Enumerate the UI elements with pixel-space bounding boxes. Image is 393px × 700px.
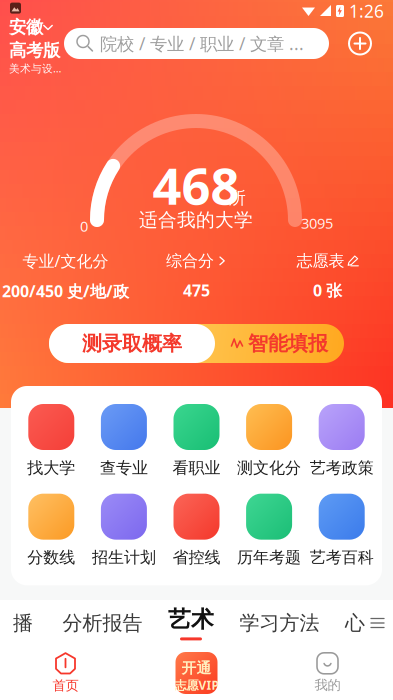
button[interactable]: Add — [349, 32, 371, 54]
staticText: 招生计划 — [92, 548, 156, 567]
staticText: 省控线 — [172, 548, 220, 567]
button[interactable]: 专业/文化分 — [0, 250, 131, 302]
button[interactable]: 艺考政策 — [305, 404, 378, 478]
staticText: 所 — [228, 187, 245, 209]
button[interactable]: 综合分 — [131, 251, 262, 301]
button[interactable]: 学习方法 — [239, 611, 319, 635]
staticText: 美术与设… — [9, 61, 61, 75]
button[interactable]: 我的 — [262, 653, 393, 693]
button[interactable]: 查专业 — [88, 404, 160, 478]
button[interactable]: 智能填报 — [215, 324, 344, 363]
staticText: 首页 — [52, 677, 78, 694]
staticText: 查专业 — [100, 458, 148, 478]
button[interactable]: 分析报告 — [62, 611, 142, 635]
button[interactable]: 开通志愿VIP — [131, 652, 262, 694]
staticText: 艺考百科 — [310, 548, 374, 567]
staticText: 心 — [345, 611, 365, 635]
staticText: 志愿表 — [296, 251, 344, 271]
staticText: 志愿VIP — [174, 677, 218, 693]
staticText: 找大学 — [27, 458, 75, 478]
staticText: 院校 / 专业 / 职业 / 文章 ... — [100, 32, 304, 55]
button[interactable]: 看职业 — [160, 404, 233, 478]
button[interactable]: 省控线 — [160, 494, 233, 567]
staticText: 播 — [13, 611, 33, 635]
staticText: 3095 — [301, 213, 333, 233]
staticText: 我的 — [314, 677, 340, 693]
button[interactable]: 首页 — [0, 652, 131, 694]
staticText: 测文化分 — [237, 458, 301, 478]
staticText: 学习方法 — [239, 611, 319, 635]
staticText: 适合我的大学 — [139, 208, 253, 231]
staticText: 1:26 — [349, 0, 384, 22]
button[interactable]: 找大学 — [15, 404, 88, 478]
staticText: 高考版 — [9, 40, 60, 61]
staticText: 分析报告 — [62, 611, 142, 635]
button[interactable]: 院校 / 专业 / 职业 / 文章 ... — [64, 28, 329, 59]
staticText: 综合分 — [166, 251, 214, 271]
staticText: 历年考题 — [237, 548, 301, 567]
button[interactable]: 播 — [9, 611, 37, 635]
staticText: 0 — [80, 216, 88, 236]
button[interactable]: 心 — [345, 611, 365, 635]
staticText: 200/450 史/地/政 — [2, 280, 129, 302]
staticText: 0 张 — [313, 280, 342, 301]
button[interactable]: 测文化分 — [233, 404, 305, 478]
button[interactable]: 招生计划 — [88, 494, 160, 567]
staticText: 468 — [152, 151, 239, 219]
button[interactable]: 历年考题 — [233, 494, 305, 567]
button[interactable]: 分数线 — [15, 494, 88, 567]
staticText: 艺术 — [168, 606, 214, 633]
staticText: 分数线 — [27, 548, 75, 567]
button[interactable]: 志愿表 — [262, 251, 393, 301]
staticText: 安徽 — [9, 17, 43, 38]
staticText: 专业/文化分 — [22, 250, 108, 271]
staticText: 测录取概率 — [82, 331, 182, 356]
staticText: 475 — [183, 280, 210, 301]
staticText: 开通 — [181, 659, 211, 677]
button[interactable]: 艺考百科 — [305, 494, 378, 567]
staticText: 智能填报 — [248, 331, 328, 356]
staticText: 看职业 — [172, 458, 220, 478]
staticText: 艺考政策 — [310, 458, 374, 478]
button[interactable]: 艺术 — [168, 606, 214, 640]
button[interactable]: 测录取概率 — [49, 324, 215, 363]
button[interactable]: More categories — [365, 616, 384, 629]
button[interactable]: 安徽 — [9, 3, 57, 75]
